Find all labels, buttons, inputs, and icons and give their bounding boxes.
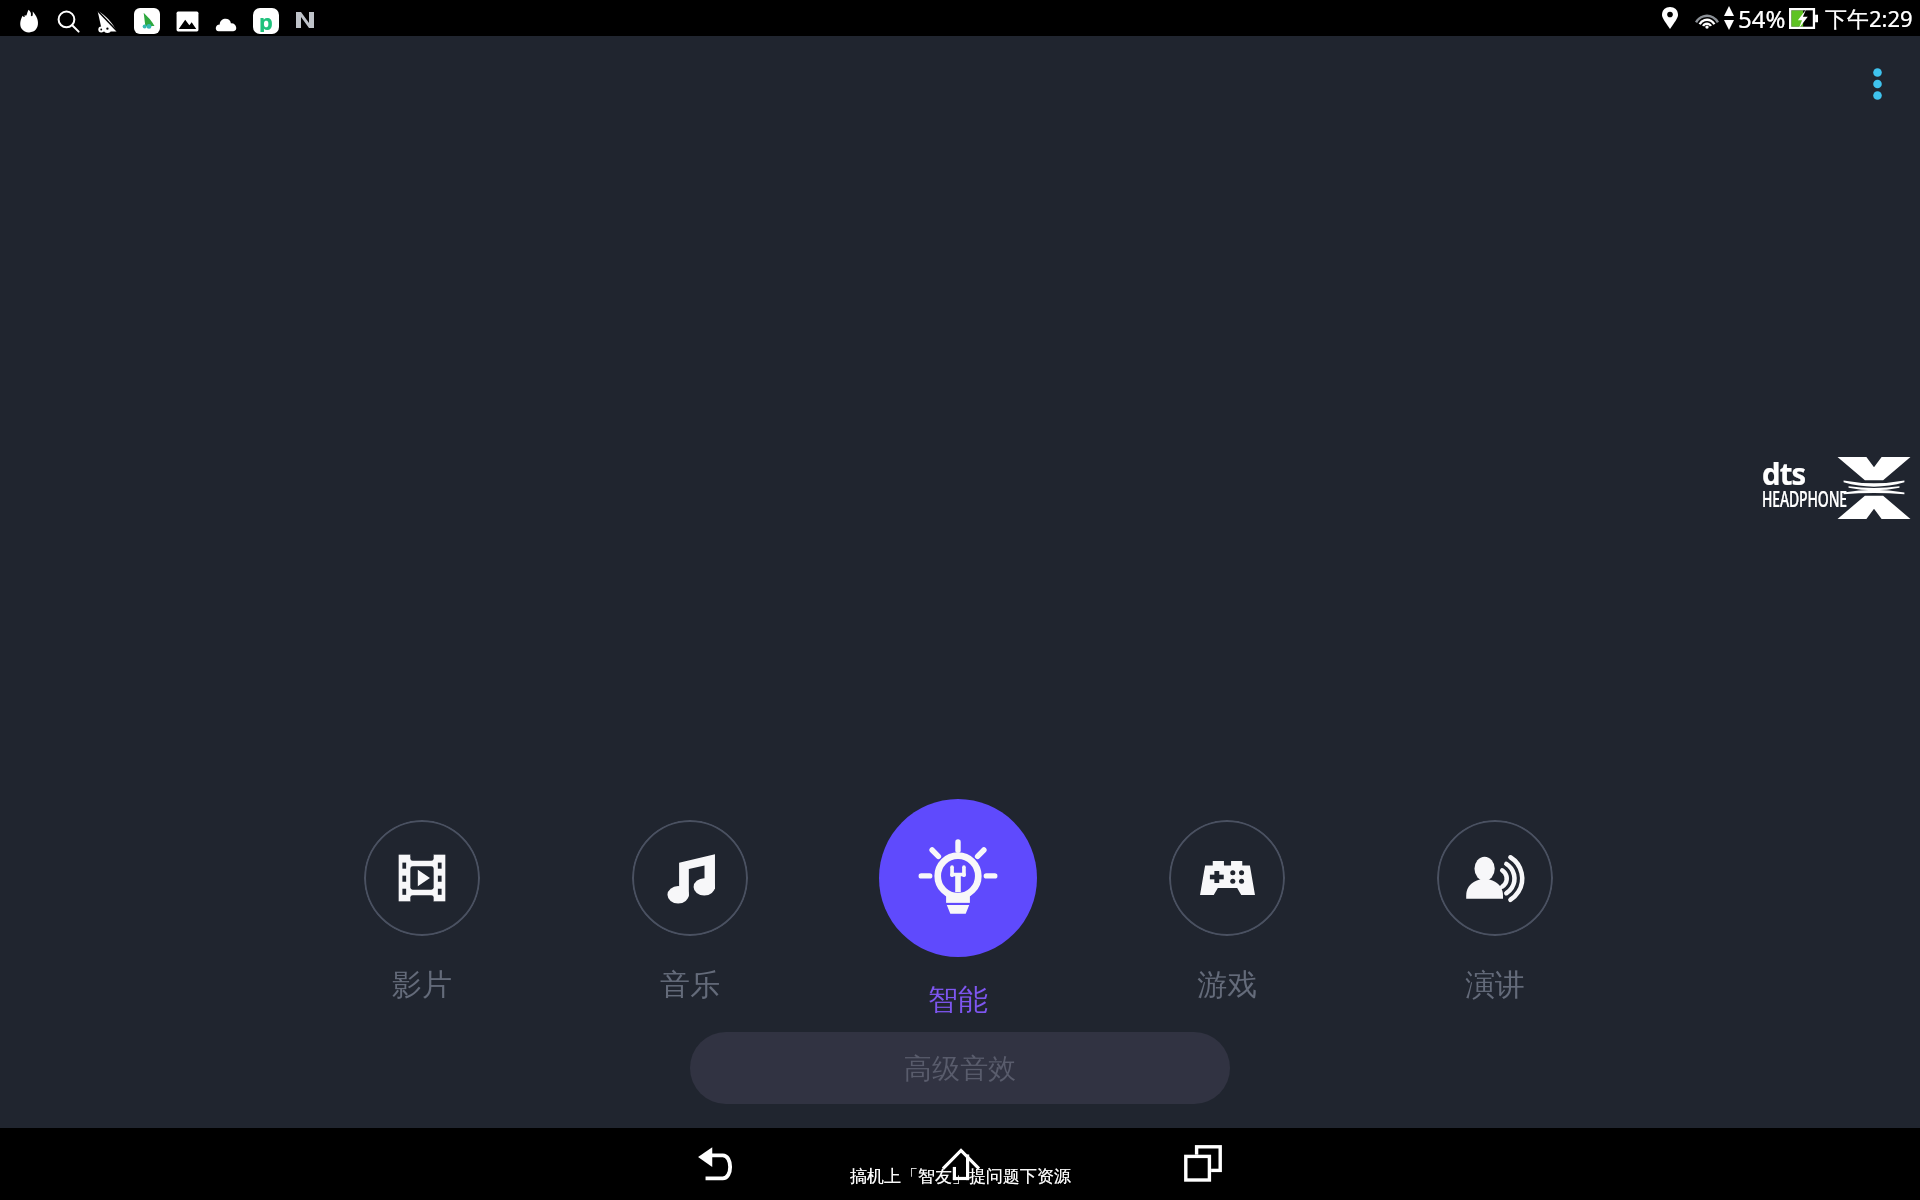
button[interactable]: 影片 bbox=[334, 795, 510, 1020]
staticText: 智能 bbox=[928, 981, 988, 1019]
staticText: 音乐 bbox=[660, 966, 720, 1004]
button[interactable]: Recents bbox=[1167, 1128, 1239, 1200]
staticText: dts bbox=[1762, 452, 1806, 494]
button[interactable]: More options bbox=[1846, 53, 1908, 115]
staticText: 54% bbox=[1738, 2, 1786, 35]
button[interactable]: 智能 bbox=[870, 795, 1046, 1020]
staticText: p bbox=[259, 8, 273, 32]
staticText: 高级音效 bbox=[904, 1051, 1016, 1086]
button[interactable]: 游戏 bbox=[1139, 795, 1315, 1020]
staticText: 游戏 bbox=[1197, 966, 1257, 1004]
staticText: HEADPHONE bbox=[1762, 483, 1847, 513]
button[interactable]: 演讲 bbox=[1407, 795, 1583, 1020]
button[interactable]: 高级音效 bbox=[690, 1032, 1230, 1104]
staticText: 演讲 bbox=[1465, 966, 1525, 1004]
button[interactable]: Home bbox=[925, 1128, 997, 1200]
button[interactable]: 音乐 bbox=[602, 795, 778, 1020]
staticText: 下午2:29 bbox=[1825, 3, 1913, 33]
staticText: 影片 bbox=[392, 966, 452, 1004]
button[interactable]: Back bbox=[682, 1128, 754, 1200]
staticText: 搞机上「智友」提问题下资源 bbox=[850, 1166, 1071, 1187]
